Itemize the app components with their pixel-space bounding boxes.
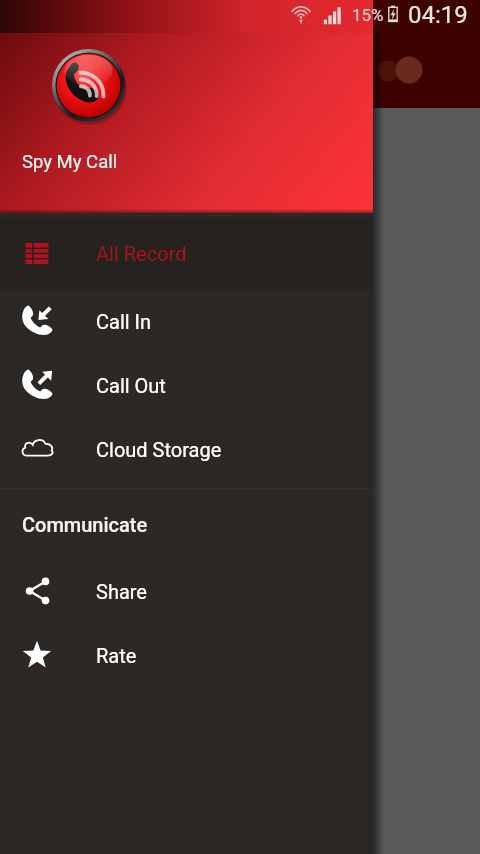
button[interactable]: All Record xyxy=(0,217,373,289)
button[interactable]: Call Out xyxy=(0,353,373,417)
staticText: Call In xyxy=(96,310,152,333)
staticText: Communicate xyxy=(22,513,148,536)
button[interactable]: Rate xyxy=(0,623,373,687)
staticText: Rate xyxy=(96,644,137,667)
staticText: Share xyxy=(96,580,147,603)
button[interactable]: Cloud Storage xyxy=(0,417,373,481)
staticText: 15% xyxy=(352,5,384,25)
button[interactable]: Share xyxy=(0,559,373,623)
button[interactable]: Spy My Call xyxy=(0,0,373,213)
staticText: Cloud Storage xyxy=(96,438,222,461)
staticText: 04:19 xyxy=(408,1,468,29)
button[interactable]: Close navigation drawer xyxy=(0,0,480,854)
staticText: Spy My Call xyxy=(22,151,118,173)
staticText: All Record xyxy=(96,242,187,265)
button[interactable]: Call In xyxy=(0,289,373,353)
staticText: Call Out xyxy=(96,374,166,397)
